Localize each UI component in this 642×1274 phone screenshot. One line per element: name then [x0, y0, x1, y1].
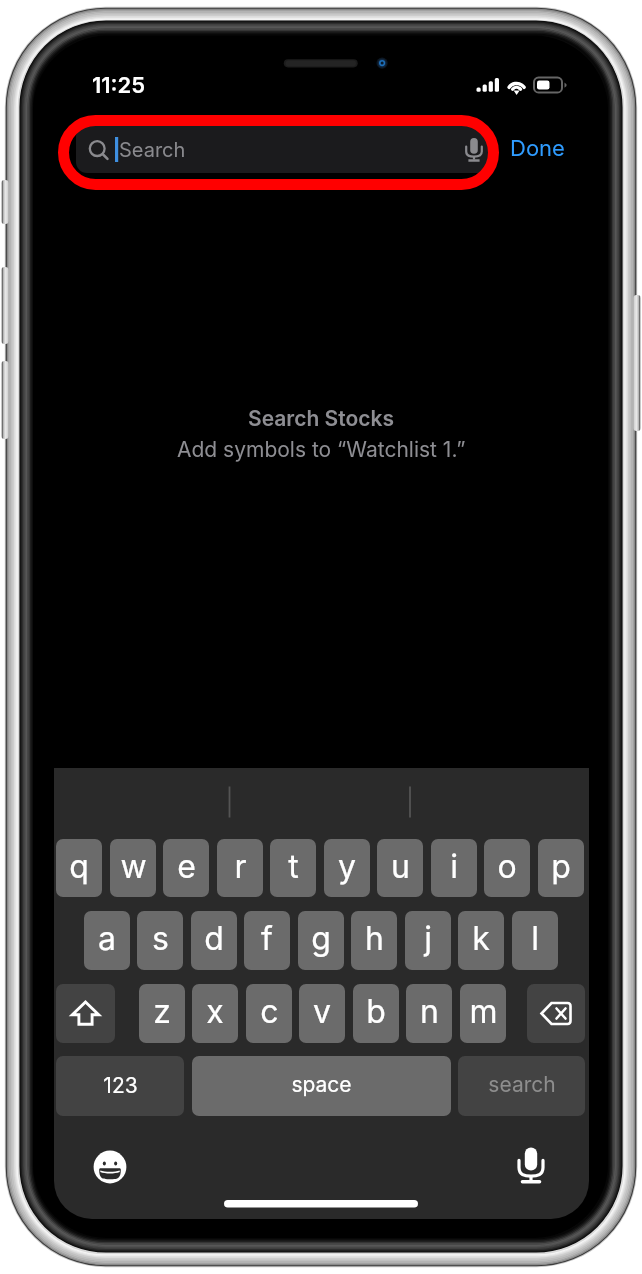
button[interactable]: t	[270, 839, 316, 897]
button[interactable]: q	[56, 839, 102, 897]
button[interactable]: 123	[56, 1056, 184, 1116]
staticText: i	[450, 847, 458, 886]
staticText: m	[469, 992, 498, 1031]
staticText: k	[472, 919, 490, 958]
button[interactable]: k	[458, 911, 504, 970]
staticText: h	[365, 919, 384, 958]
staticText: j	[424, 919, 432, 958]
staticText: Done	[510, 135, 565, 162]
button[interactable]: Dictate	[462, 138, 486, 162]
staticText: Search Stocks	[248, 406, 394, 431]
staticText: search	[488, 1072, 556, 1097]
staticText: r	[234, 847, 247, 886]
button[interactable]: y	[324, 839, 370, 897]
button[interactable]: i	[431, 839, 477, 897]
button[interactable]: space	[192, 1056, 451, 1116]
staticText: u	[391, 847, 410, 886]
button[interactable]: z	[139, 984, 185, 1043]
staticText: w	[120, 847, 147, 886]
button[interactable]: l	[512, 911, 558, 970]
staticText: g	[311, 919, 331, 958]
button[interactable]: u	[377, 839, 423, 897]
staticText: o	[497, 847, 517, 886]
button[interactable]: h	[351, 911, 397, 970]
button[interactable]: v	[299, 984, 345, 1043]
button[interactable]: d	[191, 911, 237, 970]
staticText: Add symbols to “Watchlist 1.”	[177, 437, 466, 462]
button[interactable]: p	[538, 839, 584, 897]
button[interactable]: search	[458, 1056, 585, 1116]
staticText: space	[291, 1072, 352, 1097]
button[interactable]: n	[406, 984, 452, 1043]
button[interactable]: Delete	[527, 984, 585, 1043]
button[interactable]: c	[246, 984, 292, 1043]
staticText: d	[204, 919, 224, 958]
staticText: z	[153, 992, 171, 1031]
staticText: s	[152, 919, 169, 958]
staticText: x	[206, 992, 224, 1031]
staticText: a	[98, 919, 116, 958]
button[interactable]: Search	[76, 126, 488, 173]
button[interactable]: w	[110, 839, 156, 897]
button[interactable]: Emoji	[93, 1150, 127, 1184]
staticText: p	[551, 847, 571, 886]
button[interactable]: r	[217, 839, 263, 897]
staticText: q	[69, 847, 89, 886]
staticText: l	[531, 919, 539, 958]
button[interactable]: Shift	[56, 984, 115, 1043]
button[interactable]: x	[192, 984, 238, 1043]
button[interactable]: m	[460, 984, 506, 1043]
staticText: c	[260, 992, 279, 1031]
button[interactable]: s	[137, 911, 183, 970]
staticText: 123	[103, 1073, 138, 1098]
button[interactable]: e	[163, 839, 209, 897]
staticText: y	[338, 847, 356, 886]
button[interactable]: b	[353, 984, 399, 1043]
button[interactable]: j	[405, 911, 451, 970]
staticText: v	[313, 992, 331, 1031]
button[interactable]: Done	[504, 131, 571, 166]
button[interactable]: a	[84, 911, 130, 970]
button[interactable]: f	[244, 911, 290, 970]
staticText: 11:25	[92, 72, 146, 99]
staticText: Search	[119, 138, 186, 162]
staticText: b	[366, 992, 386, 1031]
button[interactable]: g	[298, 911, 344, 970]
staticText: t	[288, 847, 299, 886]
button[interactable]: o	[484, 839, 530, 897]
staticText: f	[261, 919, 273, 958]
staticText: e	[177, 847, 196, 886]
staticText: n	[420, 992, 439, 1031]
button[interactable]: Dictation	[512, 1147, 550, 1185]
